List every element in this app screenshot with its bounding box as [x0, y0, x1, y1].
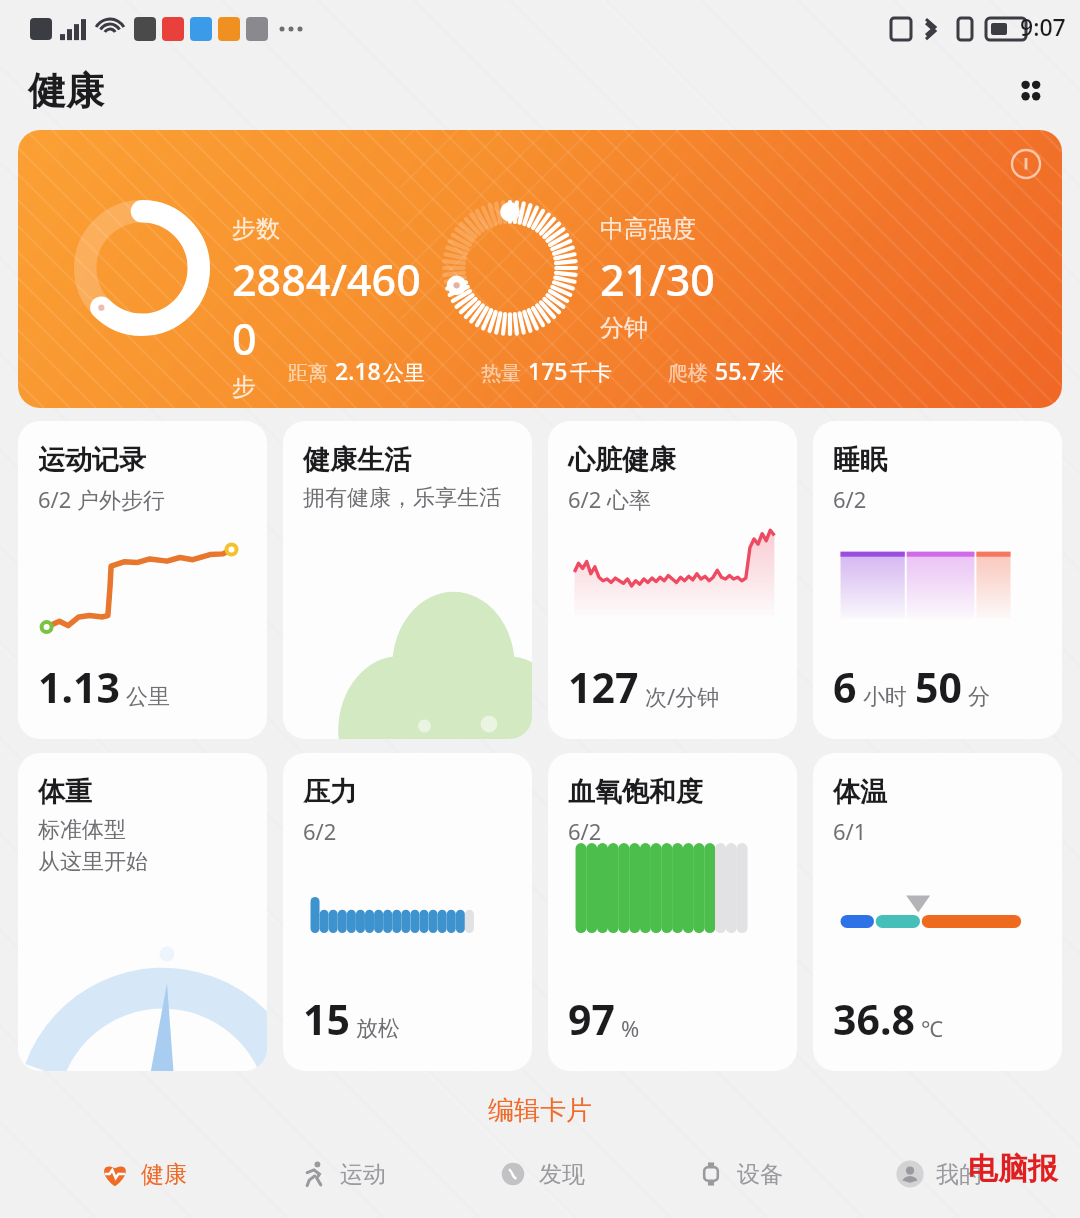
staticText: 6/2 — [303, 816, 337, 846]
button[interactable]: Information — [1010, 148, 1042, 180]
staticText: 2884/4600 — [232, 250, 442, 368]
button[interactable]: 运动记录 — [18, 421, 267, 739]
staticText: 步数 — [232, 214, 280, 244]
staticText: 发现 — [539, 1160, 585, 1189]
staticText: 电脑报 — [968, 1150, 1058, 1188]
staticText: 175 — [528, 355, 568, 386]
staticText: 拥有健康，乐享生活 — [303, 484, 501, 512]
button[interactable]: 健康生活 — [283, 421, 532, 739]
staticText: ℃ — [921, 1013, 943, 1043]
button[interactable]: 编辑卡片 — [0, 1084, 1080, 1136]
staticText: 6/2 — [568, 816, 602, 846]
staticText: 公里 — [383, 360, 425, 386]
button[interactable]: 睡眠 — [813, 421, 1062, 739]
staticText: 6 — [833, 659, 857, 715]
button[interactable]: More options — [1008, 69, 1052, 113]
button[interactable]: 我的 — [893, 1136, 982, 1212]
staticText: 千卡 — [570, 360, 612, 386]
staticText: 健康 — [28, 67, 104, 115]
staticText: 体重 — [38, 775, 92, 809]
button[interactable]: Information — [18, 130, 1062, 408]
button[interactable]: 健康 — [98, 1136, 187, 1212]
staticText: 中高强度 — [600, 214, 696, 244]
staticText: 9:07 — [1020, 11, 1066, 42]
staticText: 血氧饱和度 — [568, 775, 703, 809]
button[interactable]: 体温 — [813, 753, 1062, 1071]
staticText: 2.18 — [335, 355, 381, 386]
staticText: 压力 — [303, 775, 357, 809]
staticText: 健康生活 — [303, 443, 411, 477]
staticText: 6/2 — [833, 484, 867, 514]
staticText: 运动 — [340, 1160, 386, 1189]
staticText: 设备 — [737, 1160, 783, 1189]
staticText: 编辑卡片 — [488, 1094, 592, 1127]
button[interactable]: 心脏健康 — [548, 421, 797, 739]
staticText: 步 — [232, 372, 256, 402]
staticText: 1.13 — [38, 659, 120, 715]
staticText: 心脏健康 — [568, 443, 676, 477]
staticText: 运动记录 — [38, 443, 146, 477]
staticText: 6/2 户外步行 — [38, 484, 166, 514]
staticText: 15 — [303, 991, 350, 1047]
staticText: 标准体型 — [38, 816, 126, 844]
staticText: 健康 — [141, 1160, 187, 1189]
staticText: 从这里开始 — [38, 848, 148, 876]
staticText: 爬楼 — [668, 361, 708, 386]
staticText: 6/2 心率 — [568, 484, 652, 514]
staticText: 热量 — [481, 361, 521, 386]
staticText: 6/1 — [833, 816, 867, 846]
button[interactable]: 血氧饱和度 — [548, 753, 797, 1071]
staticText: 分 — [968, 683, 990, 711]
staticText: 距离 — [288, 361, 328, 386]
button[interactable]: 设备 — [694, 1136, 783, 1212]
staticText: 分钟 — [600, 313, 648, 343]
staticText: 50 — [915, 659, 962, 715]
button[interactable]: 体重 — [18, 753, 267, 1071]
staticText: 36.8 — [833, 991, 915, 1047]
button[interactable]: 运动 — [297, 1136, 386, 1212]
staticText: 次/分钟 — [645, 681, 720, 711]
staticText: 公里 — [126, 683, 170, 711]
staticText: 21/30 — [600, 250, 715, 309]
button[interactable]: 压力 — [283, 753, 532, 1071]
staticText: 体温 — [833, 775, 887, 809]
staticText: 97 — [568, 991, 615, 1047]
staticText: 127 — [568, 659, 639, 715]
staticText: 我的 — [936, 1160, 982, 1189]
staticText: 米 — [763, 360, 784, 386]
staticText: 放松 — [356, 1015, 400, 1043]
staticText: 小时 — [863, 683, 907, 711]
button[interactable]: 发现 — [496, 1136, 585, 1212]
staticText: 睡眠 — [833, 443, 887, 477]
staticText: 55.7 — [715, 355, 761, 386]
staticText: % — [621, 1013, 640, 1043]
